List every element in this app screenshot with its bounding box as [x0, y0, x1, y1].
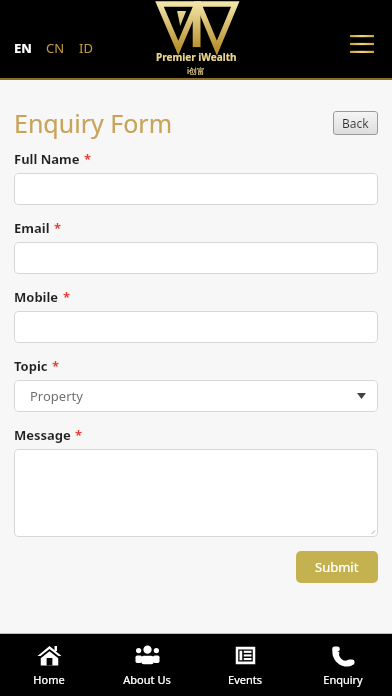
- staticText: *: [84, 150, 92, 168]
- button[interactable]: ID: [77, 37, 95, 59]
- staticText: Full Name: [14, 150, 80, 168]
- staticText: *: [52, 357, 60, 375]
- staticText: About Us: [123, 672, 171, 687]
- staticText: Message: [14, 426, 71, 444]
- staticText: Mobile: [14, 288, 59, 306]
- button[interactable]: Property: [14, 380, 378, 412]
- staticText: Home: [33, 672, 65, 687]
- staticText: ID: [79, 39, 93, 57]
- staticText: i创富: [187, 65, 206, 76]
- button[interactable]: [14, 242, 378, 274]
- staticText: Submit: [315, 558, 359, 576]
- button[interactable]: Back: [333, 111, 378, 135]
- staticText: *: [54, 219, 62, 237]
- button[interactable]: Submit: [296, 551, 378, 583]
- button[interactable]: [14, 449, 378, 537]
- button[interactable]: Menu: [342, 24, 382, 64]
- button[interactable]: CN: [44, 37, 67, 59]
- staticText: Property: [30, 387, 83, 405]
- staticText: Topic: [14, 357, 48, 375]
- staticText: *: [63, 288, 71, 306]
- staticText: Email: [14, 219, 50, 237]
- button[interactable]: [14, 311, 378, 343]
- staticText: *: [75, 426, 83, 444]
- button[interactable]: EN: [12, 37, 34, 59]
- staticText: Events: [228, 672, 262, 687]
- staticText: Enquiry Form: [14, 106, 173, 140]
- button[interactable]: About Us: [98, 636, 196, 694]
- staticText: CN: [46, 39, 65, 57]
- staticText: Enquiry: [323, 672, 363, 687]
- button[interactable]: [14, 173, 378, 205]
- button[interactable]: Events: [196, 636, 294, 694]
- button[interactable]: Home: [0, 636, 98, 694]
- button[interactable]: Enquiry: [294, 636, 392, 694]
- staticText: EN: [14, 39, 32, 57]
- button[interactable]: Premier iWealth logo: [156, 4, 237, 76]
- staticText: Back: [342, 115, 369, 131]
- staticText: Premier iWealth: [156, 50, 237, 64]
